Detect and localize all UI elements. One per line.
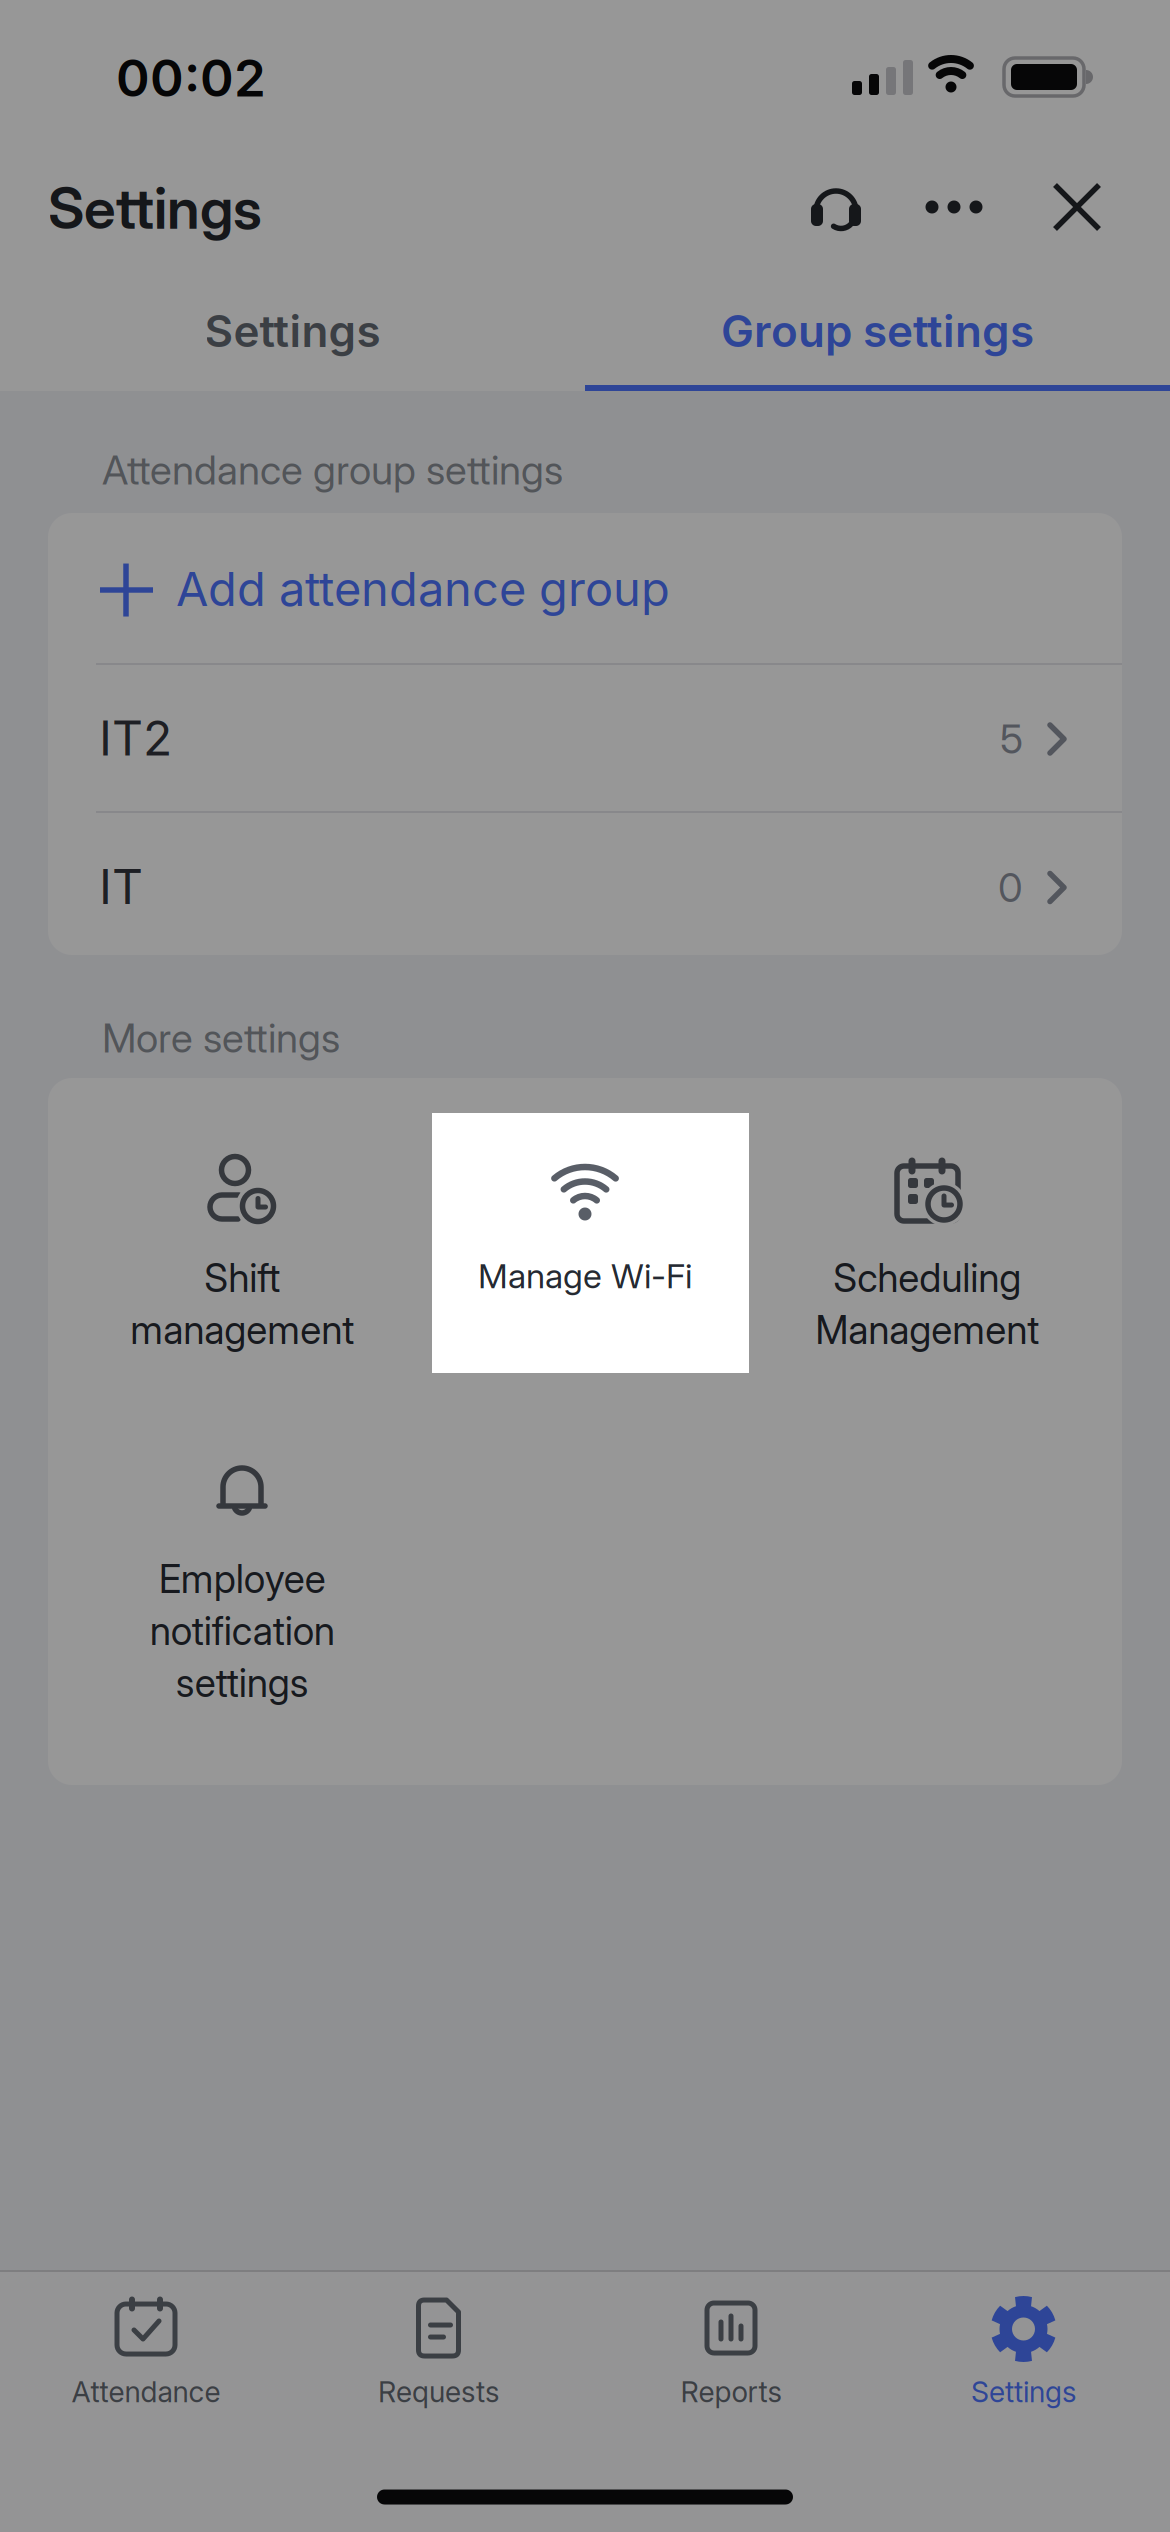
button[interactable]: Add attendance group bbox=[48, 513, 1122, 665]
button[interactable]: More bbox=[916, 177, 992, 237]
button[interactable]: Shift management bbox=[71, 1110, 413, 1410]
staticText: IT2 bbox=[99, 709, 172, 767]
button[interactable]: Attendance bbox=[0, 2275, 292, 2435]
staticText: Add attendance group bbox=[176, 561, 670, 617]
button[interactable]: Settings bbox=[877, 2275, 1169, 2435]
staticText: 5 bbox=[1000, 715, 1023, 763]
button[interactable]: Support bbox=[798, 169, 874, 245]
button[interactable]: IT2 bbox=[48, 664, 1122, 812]
staticText: 00:02 bbox=[116, 47, 266, 109]
button[interactable]: Manage Wi-Fi bbox=[432, 1113, 749, 1373]
button[interactable]: IT bbox=[48, 812, 1122, 955]
button[interactable]: Close bbox=[1039, 169, 1115, 245]
button[interactable]: Settings bbox=[0, 273, 585, 389]
staticText: Manage Wi-Fi bbox=[478, 1255, 692, 1296]
staticText: Shift management bbox=[130, 1255, 354, 1353]
button[interactable]: Employee notification settings bbox=[71, 1410, 413, 1710]
staticText: Settings bbox=[204, 304, 380, 358]
staticText: More settings bbox=[102, 1014, 340, 1062]
button[interactable]: Group settings bbox=[585, 273, 1170, 389]
staticText: 0 bbox=[998, 863, 1023, 912]
staticText: Attendance bbox=[71, 2375, 220, 2409]
staticText: Settings bbox=[971, 2375, 1076, 2409]
staticText: IT bbox=[99, 857, 143, 916]
staticText: Settings bbox=[48, 173, 262, 242]
staticText: Reports bbox=[680, 2375, 781, 2409]
staticText: Scheduling Management bbox=[815, 1255, 1039, 1353]
staticText: Group settings bbox=[721, 304, 1034, 358]
staticText: Requests bbox=[378, 2375, 499, 2409]
button[interactable]: Requests bbox=[292, 2275, 584, 2435]
staticText: Attendance group settings bbox=[102, 446, 563, 494]
button[interactable]: Reports bbox=[585, 2275, 877, 2435]
staticText: Employee notification settings bbox=[149, 1556, 334, 1706]
button[interactable]: Scheduling Management bbox=[756, 1110, 1098, 1410]
